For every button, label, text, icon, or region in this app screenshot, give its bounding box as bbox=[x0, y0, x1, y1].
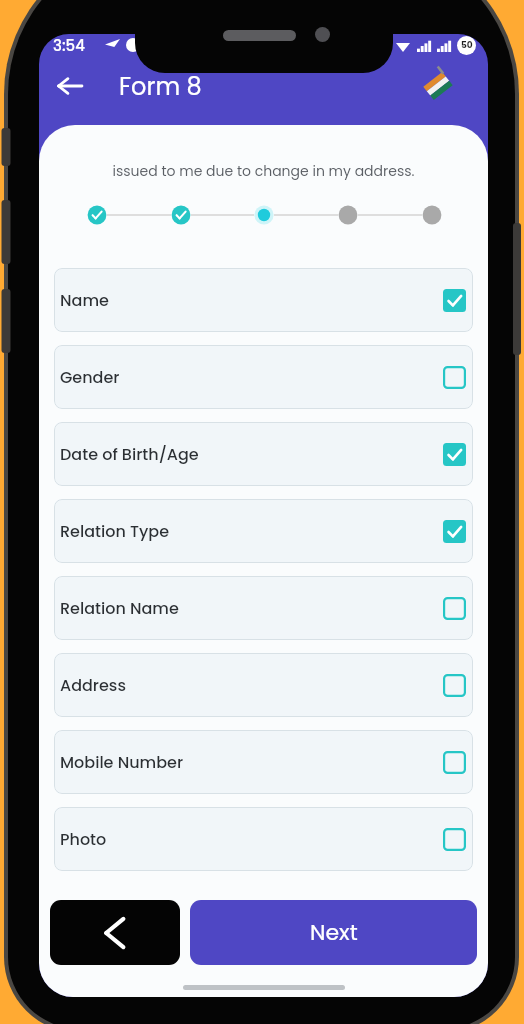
button[interactable]: Photo bbox=[54, 807, 473, 871]
button[interactable]: Back bbox=[48, 64, 92, 108]
staticText: issued to me due to change in my address… bbox=[39, 161, 488, 181]
button[interactable]: Gender bbox=[54, 345, 473, 409]
staticText: Photo bbox=[60, 828, 107, 850]
staticText: Relation Type bbox=[60, 520, 170, 542]
button[interactable]: Date of Birth/Age bbox=[54, 422, 473, 486]
button[interactable]: Relation Name bbox=[54, 576, 473, 640]
staticText: Gender bbox=[60, 366, 120, 388]
button[interactable]: Address bbox=[54, 653, 473, 717]
staticText: Relation Name bbox=[60, 597, 179, 619]
staticText: Name bbox=[60, 289, 109, 311]
button[interactable]: Next bbox=[190, 900, 477, 965]
staticText: Next bbox=[310, 917, 358, 948]
staticText: 3:54 bbox=[53, 35, 85, 56]
button[interactable]: Relation Type bbox=[54, 499, 473, 563]
button[interactable]: Mobile Number bbox=[54, 730, 473, 794]
button[interactable]: Select language bbox=[416, 64, 460, 108]
button[interactable]: Previous bbox=[50, 900, 180, 965]
staticText: Address bbox=[60, 674, 126, 696]
staticText: 50 bbox=[461, 39, 473, 52]
staticText: Form 8 bbox=[119, 70, 202, 104]
button[interactable]: Name bbox=[54, 268, 473, 332]
staticText: Date of Birth/Age bbox=[60, 443, 199, 465]
staticText: Mobile Number bbox=[60, 751, 184, 773]
